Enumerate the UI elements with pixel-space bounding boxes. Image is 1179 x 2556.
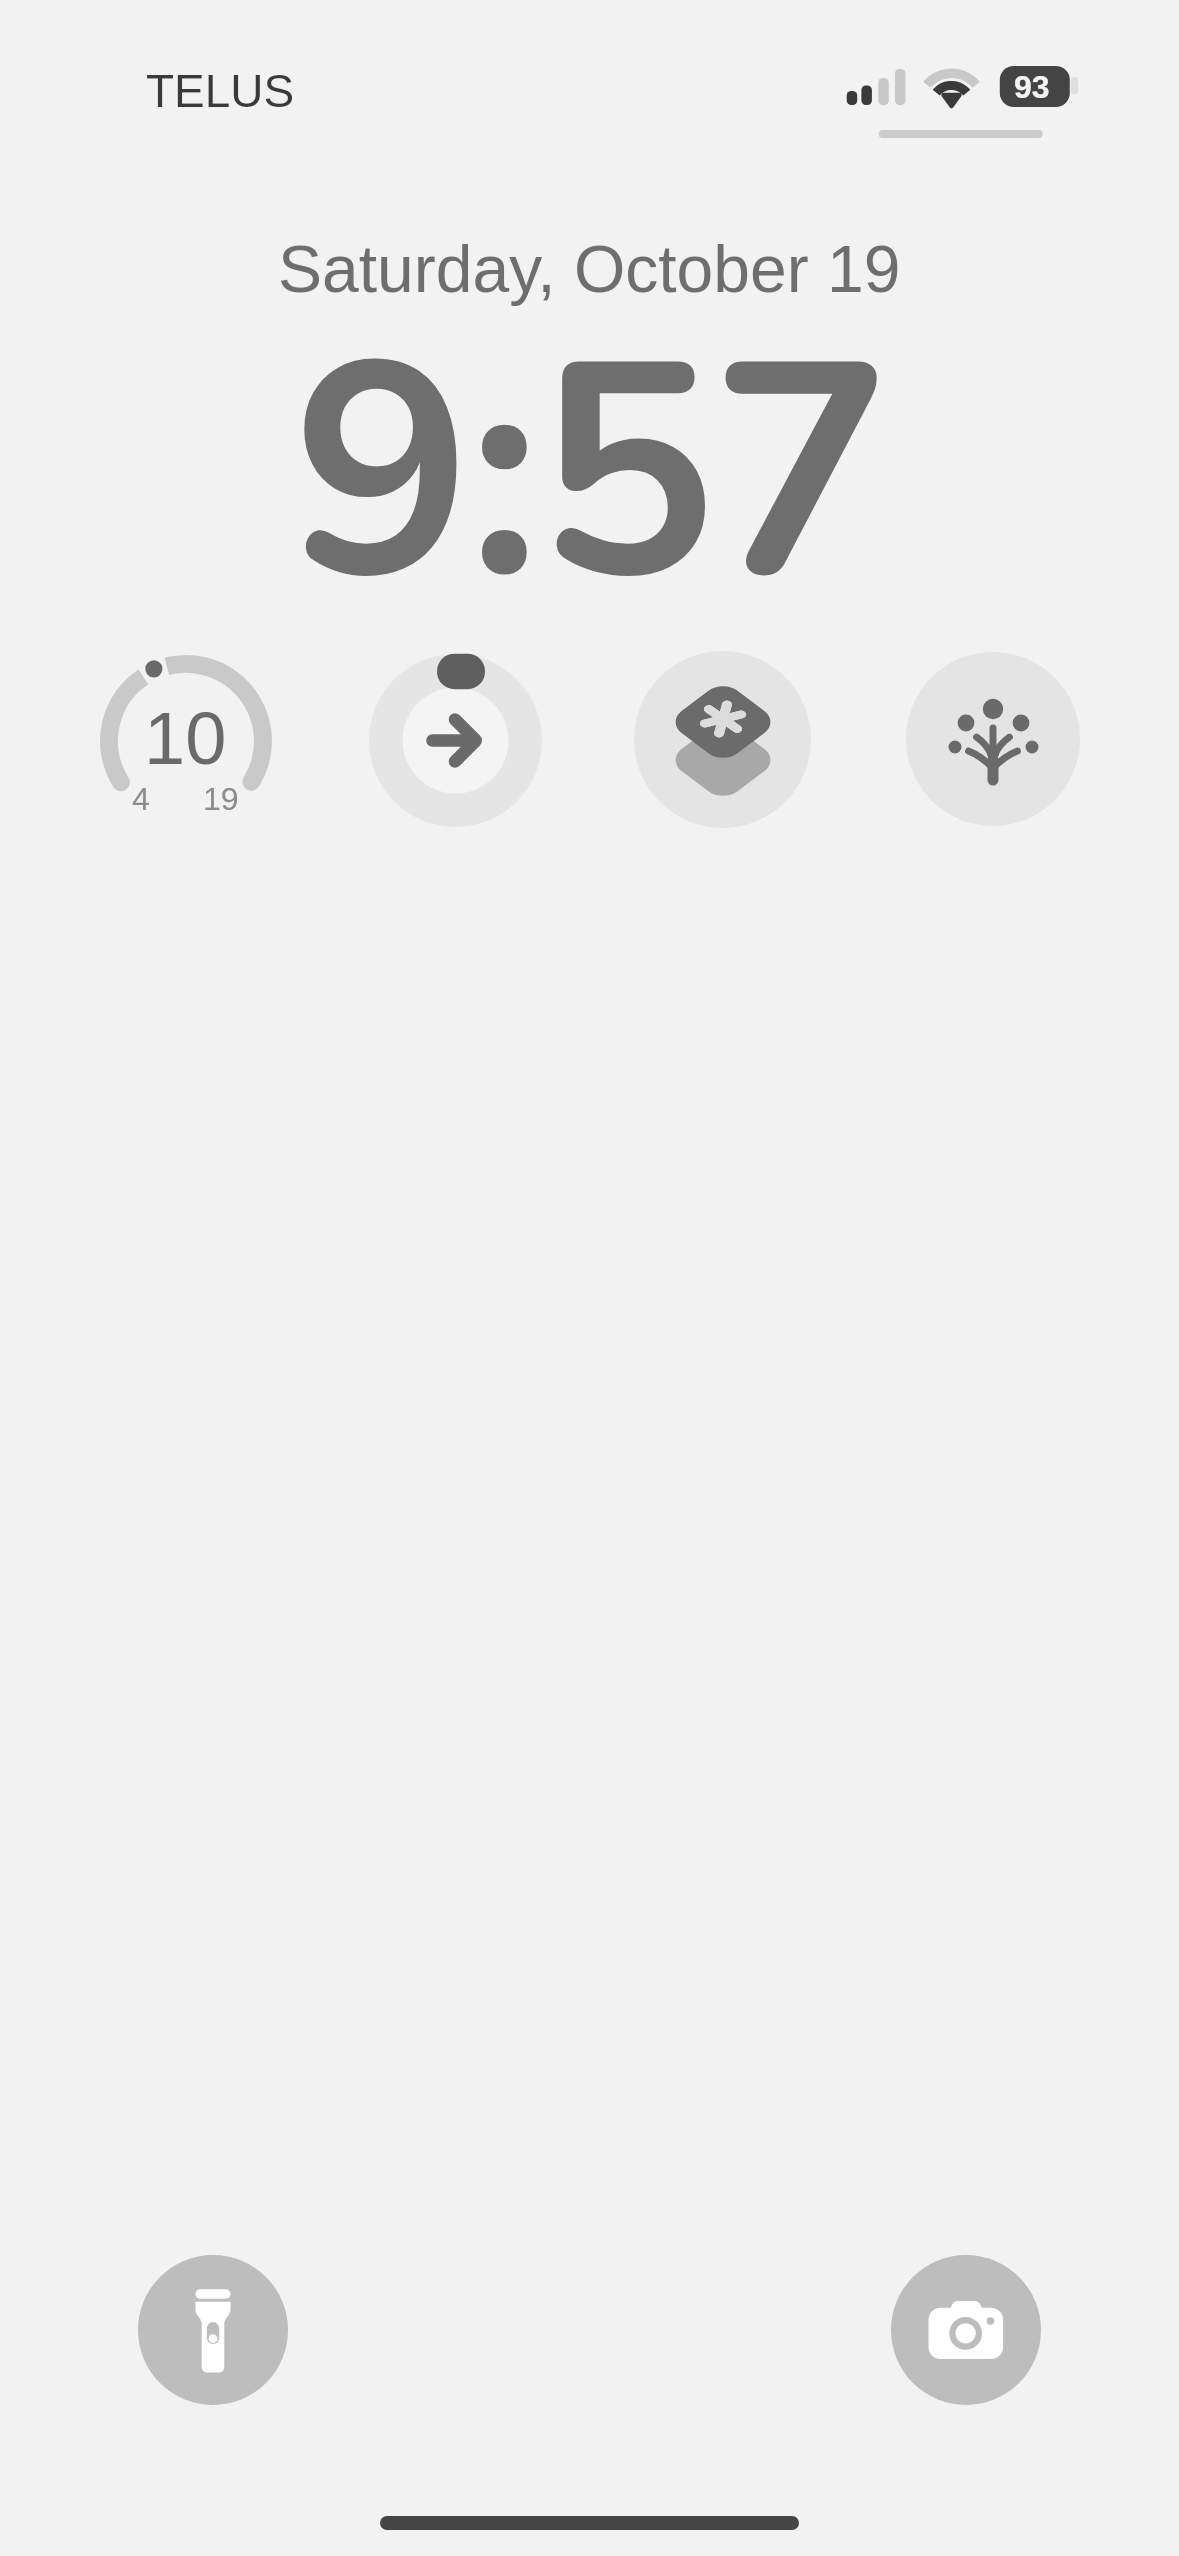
button[interactable]: Weather layers bbox=[634, 651, 811, 828]
button[interactable]: Temperature gauge bbox=[100, 655, 272, 815]
button[interactable]: Camera bbox=[891, 2255, 1041, 2405]
staticText: 19 bbox=[203, 781, 239, 817]
staticText: 4 bbox=[132, 781, 150, 817]
staticText: 93 bbox=[1014, 69, 1050, 105]
staticText: Saturday, October 19 bbox=[278, 232, 901, 306]
staticText: TELUS bbox=[146, 65, 295, 116]
button[interactable]: Directions bbox=[369, 654, 542, 827]
staticText: 10 bbox=[144, 697, 227, 780]
staticText: 9:57 bbox=[292, 270, 887, 679]
button[interactable]: Flashlight bbox=[138, 2255, 288, 2405]
button[interactable]: Fireworks bbox=[906, 652, 1080, 826]
